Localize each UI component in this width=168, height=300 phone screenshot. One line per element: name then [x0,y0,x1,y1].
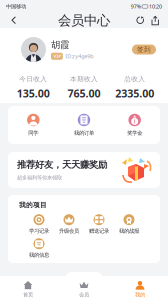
staticText: 赠送记录 [89,228,109,234]
staticText: 奖学金 [127,130,142,136]
staticText: 总收入 [124,75,145,83]
staticText: 我的项目 [19,201,47,209]
button[interactable]: 我的信息 [24,238,54,258]
staticText: 推荐好友，天天赚奖励 [17,159,107,170]
button[interactable]: 升级会员 [54,214,84,234]
button[interactable]: 签到 [132,44,156,54]
staticText: 10:20 [148,3,162,10]
staticText: 我的订单 [74,130,94,136]
staticText: 97% [131,3,141,10]
staticText: 765.00 [67,86,100,100]
staticText: 本期收入 [70,75,98,83]
staticText: 同学 [28,130,38,136]
button[interactable]: 返回 [5,11,23,29]
staticText: 我的信息 [29,252,49,258]
staticText: 2335.00 [115,86,154,100]
button[interactable]: 刷新 [133,11,148,29]
button[interactable]: 学习记录 [24,214,54,234]
staticText: VIP [53,54,60,59]
staticText: ID:zy4ge9b [65,53,93,60]
staticText: 我的战报 [119,228,139,234]
button[interactable]: 首页 [0,280,56,298]
staticText: 零钱管理 [74,278,102,286]
staticText: 学习记录 [29,228,49,234]
staticText: 会员 [79,291,89,298]
button[interactable]: 赠送记录 [84,214,114,234]
staticText: 会员中心 [58,12,110,29]
staticText: 升级会员 [59,228,79,234]
button[interactable]: 我的战报 [114,214,144,234]
button[interactable]: 同学 [8,114,59,136]
staticText: 胡霞 [51,39,69,51]
button[interactable]: 我的 [112,280,168,298]
staticText: 中国移动 [6,3,28,10]
button[interactable]: 我的订单 [59,114,109,136]
button[interactable]: 奖学金 [109,114,160,136]
staticText: 超多福利等你来领取 [17,174,62,181]
staticText: 首页 [23,291,33,298]
staticText: 我的 [135,291,145,298]
staticText: 今日收入 [19,75,47,83]
staticText: 135.00 [17,86,50,100]
button[interactable]: 分享 [148,11,163,29]
staticText: 签到 [137,45,151,54]
button[interactable]: 会员 [56,280,112,298]
